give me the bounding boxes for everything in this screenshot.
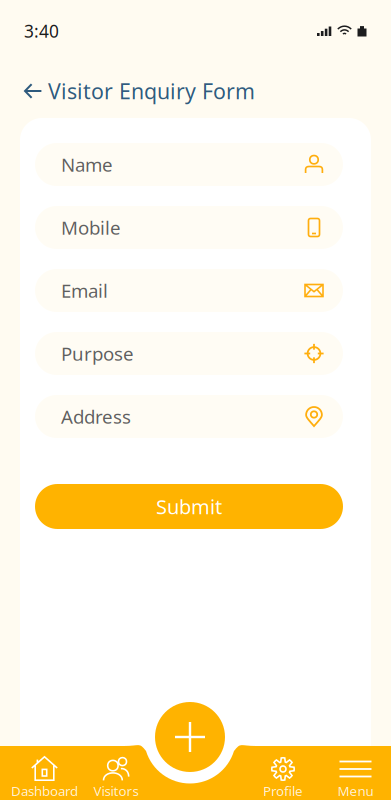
staticText: Mobile bbox=[61, 215, 121, 240]
staticText: Dashboard bbox=[11, 782, 78, 800]
staticText: Name bbox=[61, 152, 113, 177]
button[interactable]: Menu bbox=[324, 746, 386, 800]
button[interactable]: Back bbox=[24, 76, 42, 106]
staticText: 3:40 bbox=[24, 19, 59, 42]
staticText: Email bbox=[61, 278, 108, 303]
staticText: Visitor Enquiry Form bbox=[48, 77, 255, 105]
button[interactable]: Purpose bbox=[35, 332, 343, 375]
button[interactable]: Email bbox=[35, 269, 343, 312]
button[interactable]: Address bbox=[35, 395, 343, 438]
staticText: Visitors bbox=[93, 782, 138, 800]
button[interactable]: Dashboard bbox=[0, 746, 89, 800]
button[interactable]: Profile bbox=[241, 746, 324, 800]
button[interactable]: Mobile bbox=[35, 206, 343, 249]
button[interactable]: Add bbox=[156, 703, 224, 771]
staticText: Purpose bbox=[61, 341, 134, 366]
staticText: Profile bbox=[263, 782, 303, 800]
staticText: Address bbox=[61, 404, 131, 429]
button[interactable]: Submit bbox=[35, 484, 343, 529]
staticText: Submit bbox=[156, 493, 222, 520]
button[interactable]: Name bbox=[35, 143, 343, 186]
staticText: Menu bbox=[337, 782, 373, 800]
button[interactable]: Visitors bbox=[89, 746, 143, 800]
